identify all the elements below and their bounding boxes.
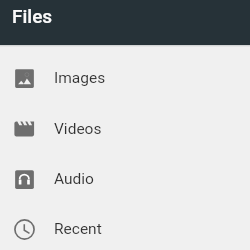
staticText: Videos — [54, 120, 102, 138]
staticText: Audio — [54, 170, 94, 188]
button[interactable]: Videos — [0, 105, 250, 153]
staticText: Files — [12, 5, 53, 27]
button[interactable]: Recent — [0, 205, 250, 250]
staticText: Recent — [54, 220, 102, 238]
button[interactable]: Images — [0, 54, 250, 102]
button[interactable]: Audio — [0, 155, 250, 203]
staticText: Images — [54, 69, 106, 87]
